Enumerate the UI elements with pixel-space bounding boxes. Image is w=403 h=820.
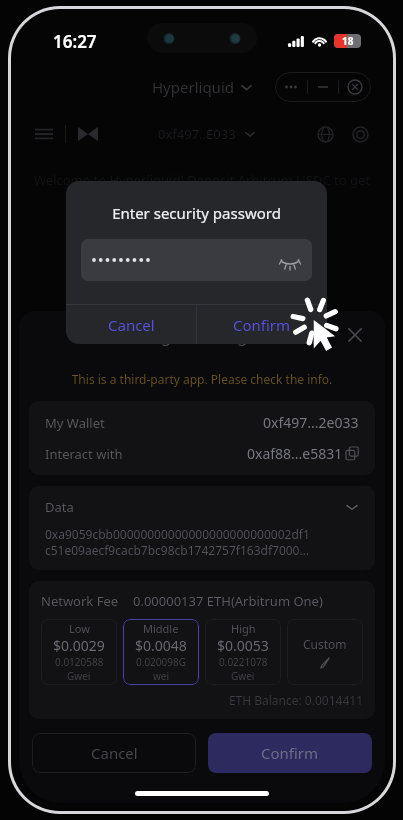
button[interactable]: Show password (279, 249, 301, 271)
staticText: $0.0048 (135, 636, 187, 655)
staticText: Confirm (261, 743, 319, 763)
staticText: Welcome to Hyperliquid! Deposit Arbitrum… (27, 171, 377, 207)
staticText: 0.020098G (136, 655, 186, 669)
staticText: 0xaf88...e5831 (247, 444, 343, 463)
staticText: 0.0221078 (219, 655, 268, 669)
staticText: 0xf497..E033 (158, 125, 236, 143)
staticText: Data (45, 498, 74, 516)
staticText: Gwei (67, 669, 91, 683)
button[interactable]: Confirm (197, 305, 327, 344)
staticText: Middle (143, 621, 179, 636)
staticText: This is a third-party app. Please check … (19, 371, 385, 387)
staticText: Enter security password (66, 203, 327, 223)
button[interactable]: Custom (287, 619, 363, 685)
staticText: 18 (342, 34, 354, 48)
staticText: 0xa9059cbb00000000000000000000000002df1 (45, 526, 310, 542)
button[interactable]: Close (343, 323, 367, 347)
staticText: Cancel (91, 743, 138, 763)
staticText: Sign Message (147, 324, 257, 347)
button[interactable]: Show password (81, 239, 312, 281)
button[interactable]: Middle (123, 619, 199, 685)
staticText: Hyperliquid (152, 77, 234, 97)
button[interactable]: Low (41, 619, 117, 685)
staticText: c51e09aecf9cacb7bc98cb1742757f163df7000… (45, 542, 309, 558)
button[interactable]: Cancel (66, 305, 196, 344)
staticText: ETH Balance: 0.0014411 (41, 692, 363, 708)
staticText: Custom (303, 636, 347, 652)
staticText: 0.0120588 (55, 655, 104, 669)
staticText: 0.00000137 ETH(Arbitrum One) (133, 592, 323, 610)
staticText: Gwei (231, 669, 255, 683)
button[interactable]: High (205, 619, 281, 685)
staticText: My Wallet (45, 414, 105, 432)
button[interactable]: Cancel (32, 733, 196, 773)
staticText: High (231, 621, 256, 636)
staticText: Low (69, 621, 90, 636)
staticText: Cancel (108, 315, 155, 335)
staticText: Network Fee (41, 592, 119, 610)
staticText: Interact with (45, 445, 123, 463)
button[interactable]: Copy address (346, 447, 359, 460)
button[interactable]: Data (29, 486, 375, 570)
staticText: $0.0029 (53, 636, 105, 655)
staticText: Confirm (233, 315, 291, 335)
button[interactable]: Confirm (208, 733, 372, 773)
staticText: $0.0053 (217, 636, 269, 655)
staticText: wei (153, 669, 170, 683)
staticText: 16:27 (53, 30, 97, 53)
staticText: 0xf497...2e033 (263, 413, 359, 432)
